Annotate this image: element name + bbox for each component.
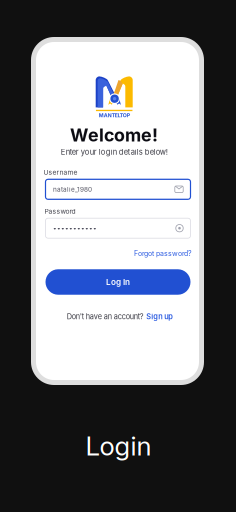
staticText: Enter your login details below!: [61, 147, 168, 157]
staticText: MANTELTOP: [99, 112, 130, 119]
staticText: Password: [44, 207, 75, 215]
button[interactable]: Log In: [45, 269, 190, 295]
staticText: Don't have an account?: [67, 312, 144, 321]
button[interactable]: Forgot password?: [133, 247, 193, 260]
staticText: Username: [43, 168, 77, 176]
staticText: Log In: [106, 277, 130, 287]
staticText: Forgot password?: [134, 249, 192, 258]
staticText: natalie_1980: [53, 185, 92, 193]
staticText: Sign up: [146, 312, 173, 321]
button[interactable]: Sign up: [146, 312, 173, 321]
staticText: Welcome!: [70, 124, 158, 146]
staticText: •••••••••••: [53, 224, 97, 232]
staticText: Login: [85, 430, 151, 462]
